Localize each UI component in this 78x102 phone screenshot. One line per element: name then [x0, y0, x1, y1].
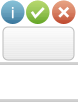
button[interactable]: Information — [1, 0, 24, 24]
button[interactable]: Accept — [26, 0, 49, 24]
button[interactable]: Reject — [52, 0, 75, 24]
